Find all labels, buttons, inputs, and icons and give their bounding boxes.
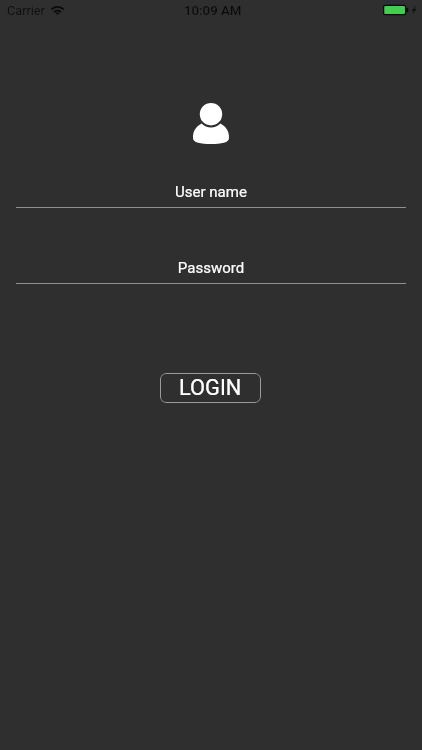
staticText: Password bbox=[16, 259, 406, 277]
other: Profile avatar bbox=[193, 103, 229, 144]
button[interactable]: LOGIN bbox=[160, 373, 261, 403]
staticText: 10:09 AM bbox=[184, 3, 242, 19]
button[interactable]: User name bbox=[16, 179, 406, 208]
staticText: LOGIN bbox=[179, 375, 242, 401]
staticText: User name bbox=[16, 183, 406, 201]
button[interactable]: Password bbox=[16, 255, 406, 284]
staticText: Carrier bbox=[7, 3, 45, 18]
